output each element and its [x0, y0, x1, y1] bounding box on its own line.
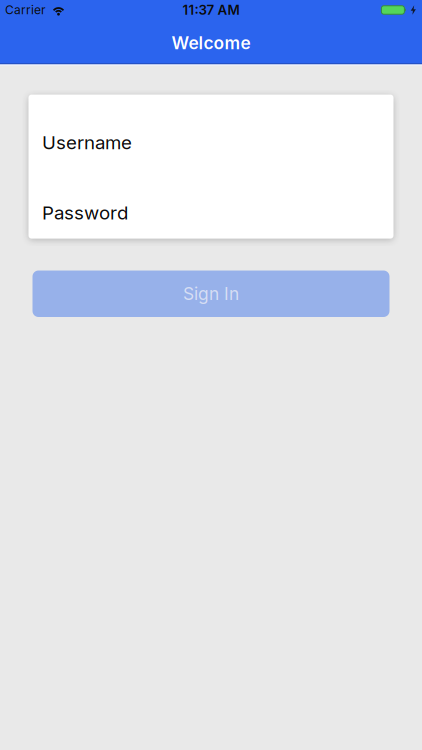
button[interactable]: Password [42, 191, 380, 235]
staticText: Carrier [5, 3, 46, 17]
staticText: Sign In [183, 283, 239, 304]
button[interactable]: Username [42, 120, 380, 164]
staticText: Password [42, 202, 128, 224]
button[interactable]: Sign In [32, 270, 389, 317]
staticText: Welcome [171, 33, 250, 53]
staticText: Username [42, 131, 132, 153]
staticText: 11:37 AM [182, 2, 239, 18]
